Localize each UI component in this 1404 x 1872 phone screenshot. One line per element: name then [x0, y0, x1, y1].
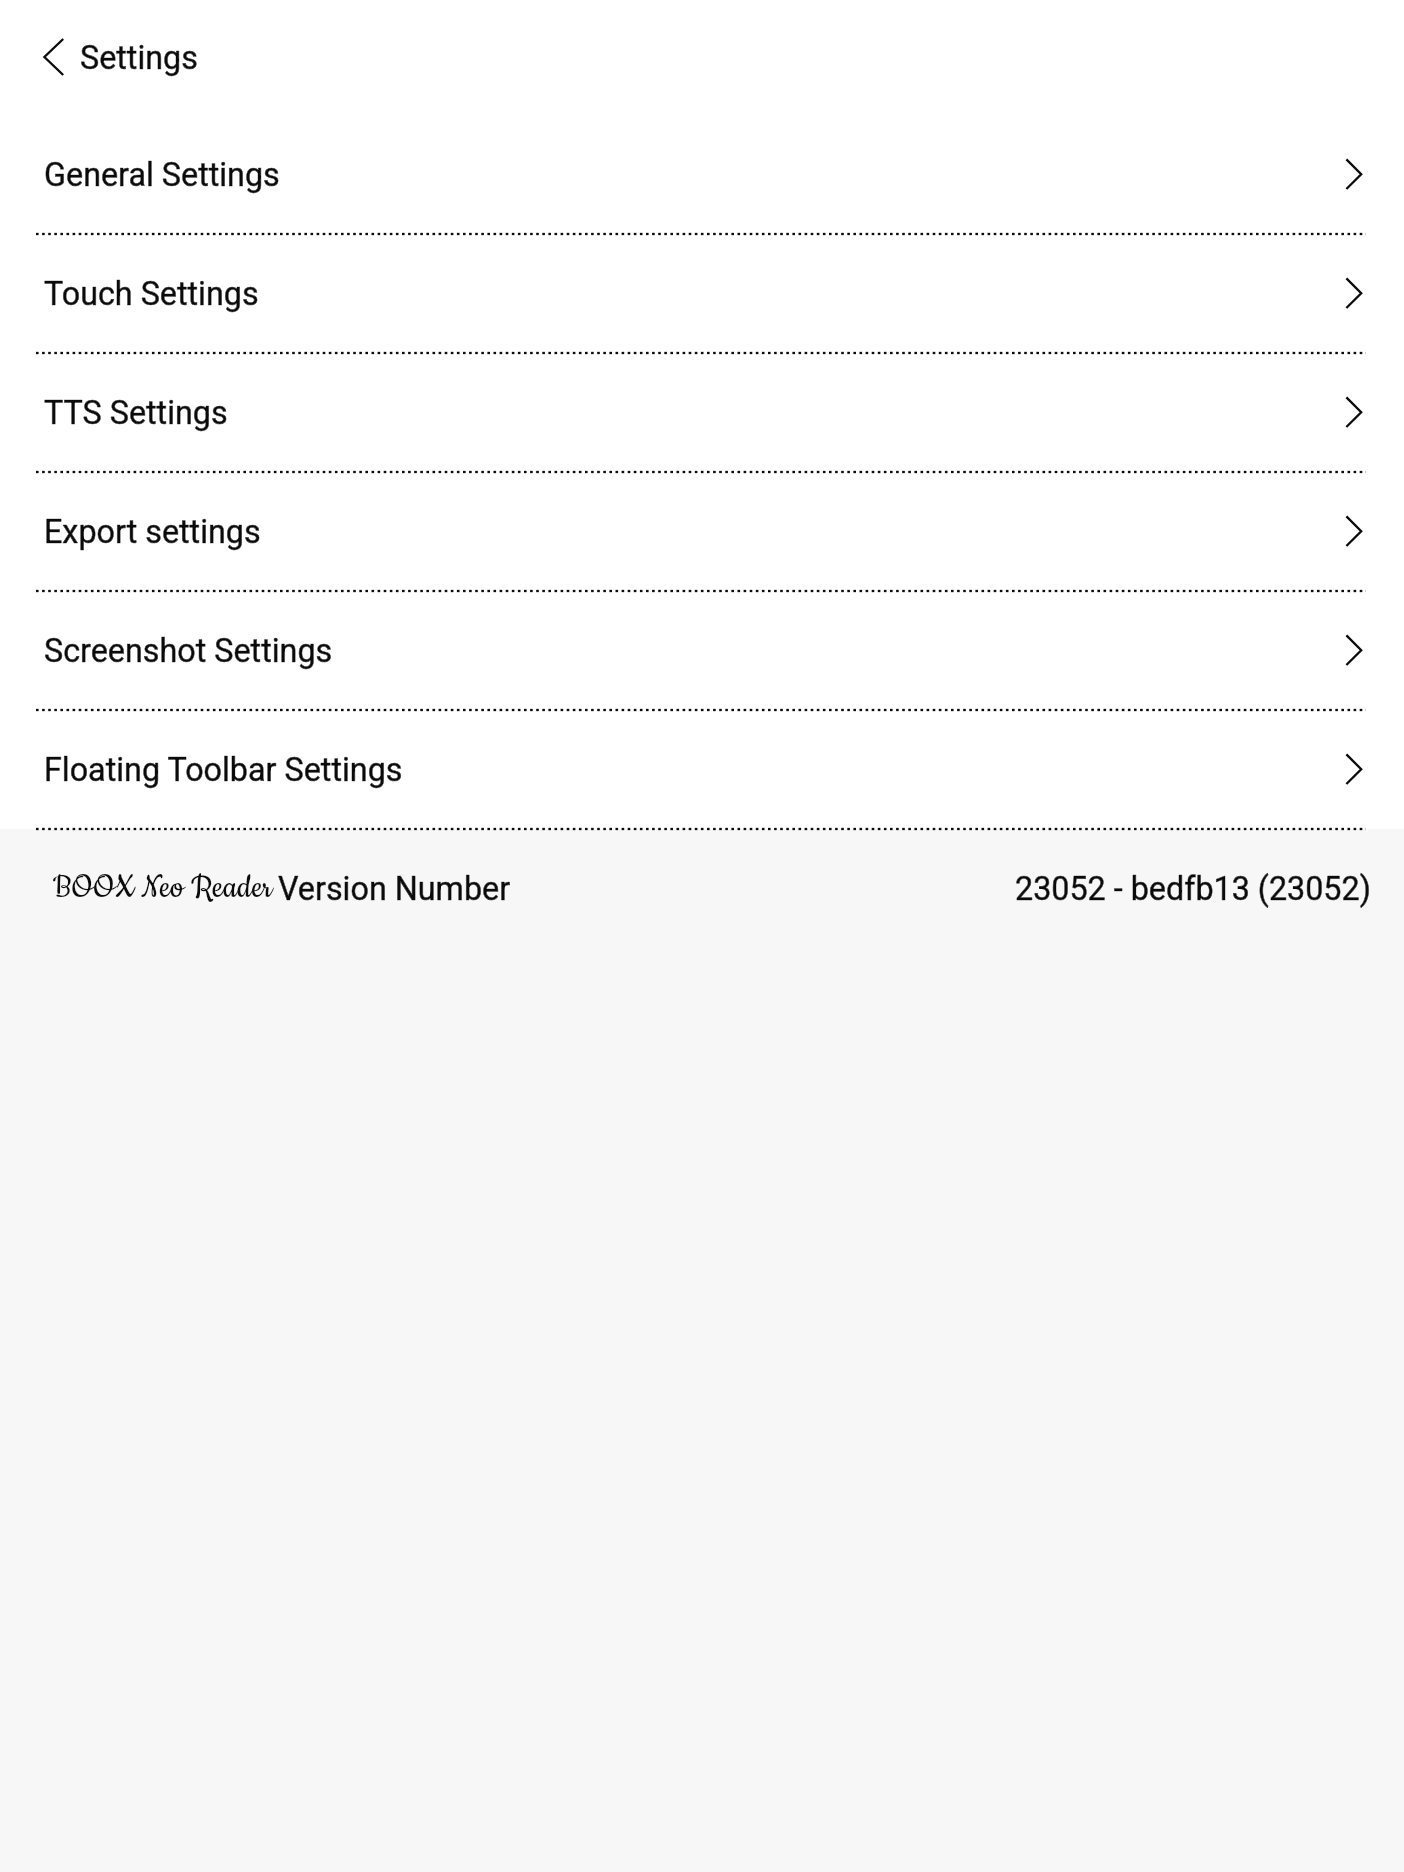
staticText: Touch Settings	[44, 275, 259, 313]
staticText: 23052 - bedfb13 (23052)	[1015, 870, 1371, 908]
staticText: 23052 - bedfb13 (23052)	[1015, 870, 1371, 908]
button[interactable]: Back	[34, 32, 202, 84]
button[interactable]: Touch Settings	[0, 234, 1404, 353]
staticText: Export settings	[44, 513, 261, 551]
staticText: Floating Toolbar Settings	[44, 751, 403, 789]
staticText: Version Number	[278, 870, 511, 908]
staticText: Export settings	[44, 513, 261, 551]
staticText: General Settings	[44, 156, 280, 194]
staticText: Version Number	[278, 870, 511, 908]
button[interactable]: Export settings	[0, 472, 1404, 591]
button[interactable]: Screenshot Settings	[0, 591, 1404, 710]
staticText: General Settings	[44, 156, 280, 194]
staticText: BOOX Neo Reader	[53, 868, 273, 909]
button[interactable]: TTS Settings	[0, 353, 1404, 472]
button[interactable]: General Settings	[0, 115, 1404, 234]
staticText: TTS Settings	[44, 394, 228, 432]
staticText: Settings	[80, 39, 198, 77]
staticText: TTS Settings	[44, 394, 228, 432]
staticText: Settings	[80, 39, 198, 77]
staticText: Screenshot Settings	[44, 632, 333, 670]
staticText: Floating Toolbar Settings	[44, 751, 403, 789]
staticText: Touch Settings	[44, 275, 259, 313]
staticText: Screenshot Settings	[44, 632, 333, 670]
button[interactable]: Floating Toolbar Settings	[0, 710, 1404, 829]
